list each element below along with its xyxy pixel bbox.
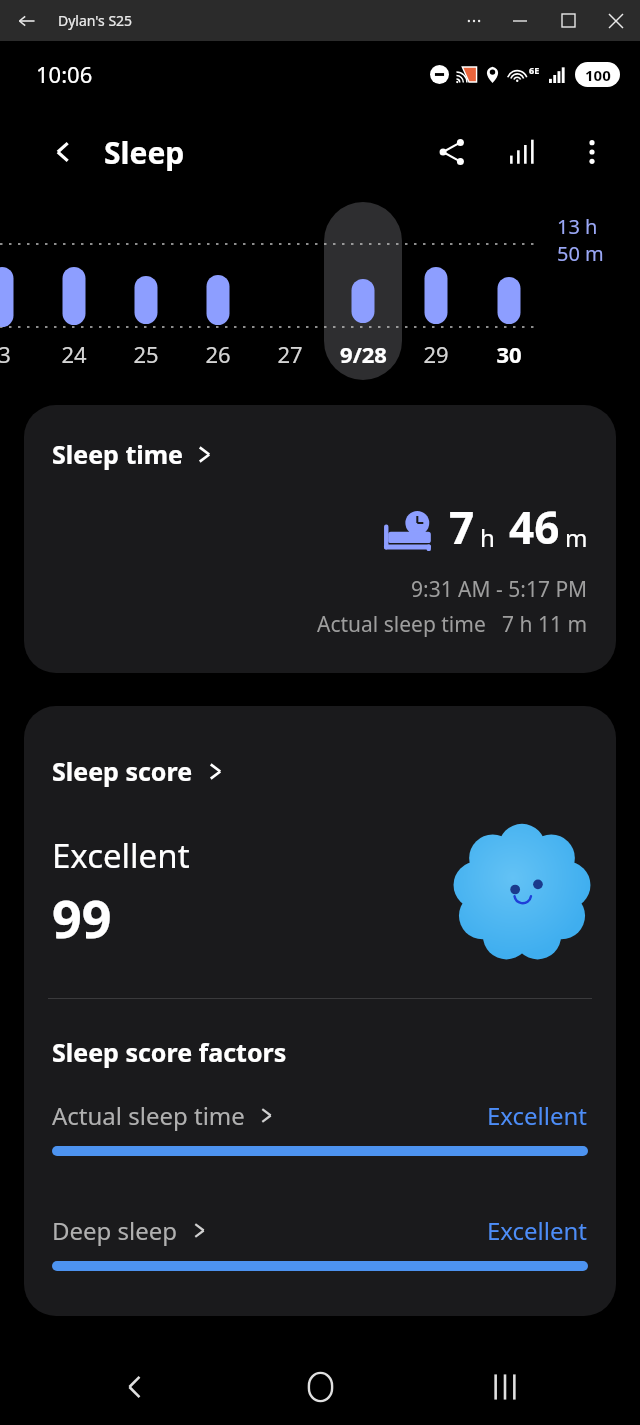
button[interactable]: Deep sleep (24, 1214, 616, 1271)
button[interactable]: 30 (469, 339, 549, 369)
staticText: Excellent (487, 1099, 588, 1132)
staticText: 10:06 (36, 59, 93, 89)
button[interactable]: Minimize (496, 0, 544, 41)
staticText: Actual sleep time (317, 610, 486, 639)
button[interactable]: Recents (455, 1348, 555, 1425)
button[interactable]: Back (10, 4, 44, 38)
staticText: 9:31 AM - 5:17 PM (411, 575, 588, 604)
button[interactable]: 3 (0, 339, 44, 369)
staticText: 7 h 11 m (502, 610, 588, 639)
staticText: 13 h (557, 213, 598, 240)
button[interactable]: Sleep score (52, 754, 224, 788)
staticText: 100 (585, 65, 611, 85)
button[interactable]: More options (568, 128, 616, 176)
staticText: 6E (529, 64, 540, 76)
staticText: 25 (133, 339, 159, 369)
button[interactable]: Actual sleep time (24, 1099, 616, 1156)
button[interactable]: 27 (250, 339, 330, 369)
staticText: Sleep time (52, 437, 184, 471)
button[interactable]: Close (592, 0, 640, 41)
button[interactable]: Back (40, 129, 86, 175)
staticText: 9/28 (340, 339, 387, 369)
staticText: Deep sleep (52, 1214, 178, 1247)
button[interactable]: 9/28 (323, 339, 403, 369)
button[interactable]: Home (270, 1348, 370, 1425)
staticText: 26 (205, 339, 231, 369)
staticText: 24 (61, 339, 87, 369)
button[interactable]: More options (452, 0, 496, 41)
staticText: Sleep score (52, 754, 193, 788)
button[interactable]: 26 (178, 339, 258, 369)
staticText: h (480, 521, 495, 554)
staticText: Sleep score factors (52, 1035, 287, 1069)
button[interactable]: Share (428, 128, 476, 176)
staticText: 27 (277, 339, 303, 369)
staticText: 29 (423, 339, 449, 369)
staticText: 7 (449, 497, 475, 557)
staticText: 50 m (557, 240, 604, 267)
staticText: 46 (509, 497, 560, 557)
button[interactable]: 29 (396, 339, 476, 369)
staticText: Dylan's S25 (58, 11, 133, 30)
staticText: Excellent (52, 833, 190, 878)
staticText: Excellent (487, 1214, 588, 1247)
staticText: 3 (0, 339, 11, 369)
staticText: Sleep (104, 132, 185, 173)
button[interactable]: Sleep time (24, 405, 616, 673)
staticText: m (565, 521, 588, 554)
staticText: 99 (52, 882, 112, 953)
button[interactable]: 24 (34, 339, 114, 369)
button[interactable]: Back (85, 1348, 185, 1425)
button[interactable]: 25 (106, 339, 186, 369)
button[interactable]: Maximize (544, 0, 592, 41)
button[interactable]: Trends (498, 128, 546, 176)
staticText: 30 (496, 339, 522, 369)
staticText: Actual sleep time (52, 1099, 245, 1132)
